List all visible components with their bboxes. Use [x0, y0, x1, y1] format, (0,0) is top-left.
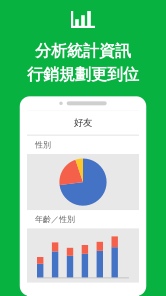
staticText: 性別: [35, 140, 51, 150]
staticText: 好友: [74, 117, 92, 128]
staticText: 分析統計資訊: [35, 41, 131, 61]
staticText: 年齡／性別: [35, 214, 75, 224]
staticText: 行銷規劃更到位: [27, 65, 139, 84]
